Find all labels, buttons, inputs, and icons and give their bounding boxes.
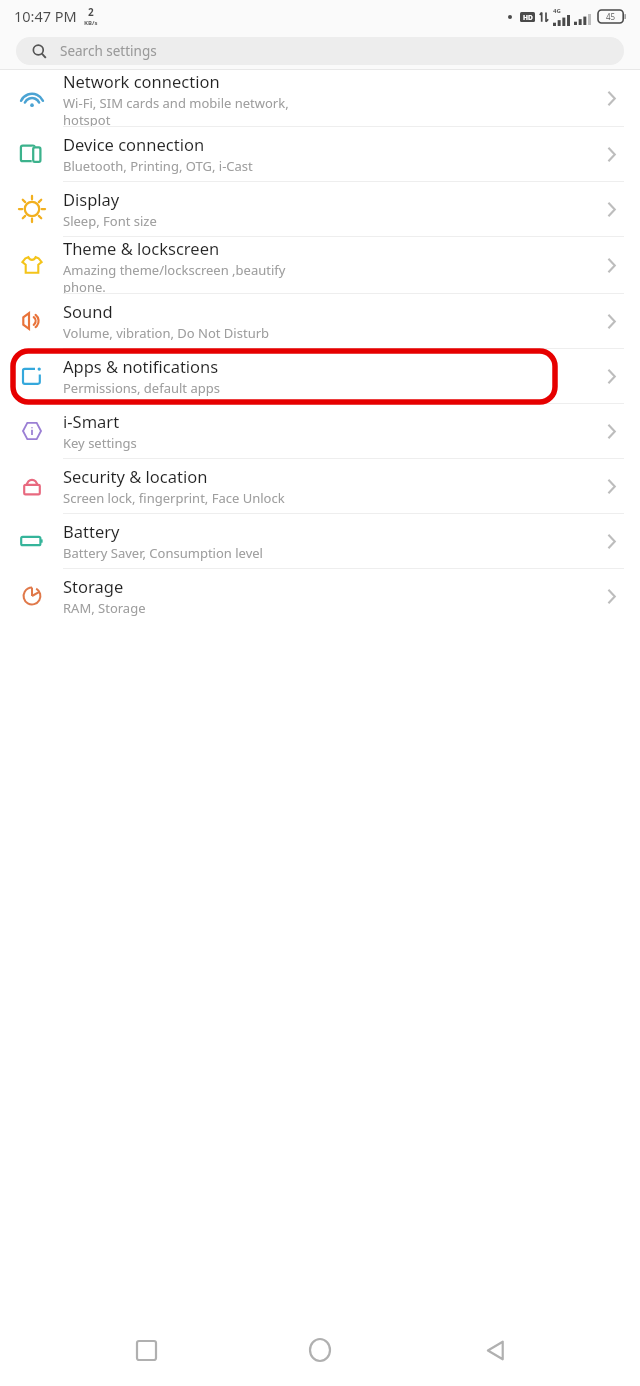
staticText: Sound	[63, 300, 113, 322]
button[interactable]: Recent apps	[117, 1321, 175, 1379]
button[interactable]: Display	[0, 182, 640, 236]
staticText: Search settings	[60, 42, 157, 60]
staticText: 45	[606, 11, 616, 22]
button[interactable]: Theme & lockscreen	[0, 237, 640, 293]
staticText: 10:47 PM	[14, 6, 77, 26]
staticText: Battery Saver, Consumption level	[63, 544, 263, 562]
button[interactable]: Battery	[0, 514, 640, 568]
staticText: KB/s	[84, 19, 98, 27]
button[interactable]: Device connection	[0, 127, 640, 181]
staticText: RAM, Storage	[63, 599, 146, 617]
button[interactable]: Search settings	[16, 37, 624, 65]
staticText: Theme & lockscreen	[63, 237, 220, 259]
staticText: Screen lock, fingerprint, Face Unlock	[63, 489, 285, 507]
staticText: Bluetooth, Printing, OTG, i-Cast	[63, 157, 253, 175]
staticText: Display	[63, 188, 120, 210]
staticText: Wi-Fi, SIM cards and mobile network, hot…	[63, 94, 289, 126]
staticText: Key settings	[63, 434, 137, 452]
button[interactable]: i-Smart	[0, 404, 640, 458]
button[interactable]: Network connection	[0, 70, 640, 126]
staticText: Battery	[63, 520, 120, 542]
button[interactable]: Back	[466, 1321, 524, 1379]
staticText: Amazing theme/lockscreen ,beautify phone…	[63, 261, 286, 293]
button[interactable]: Sound	[0, 294, 640, 348]
staticText: i-Smart	[63, 410, 120, 432]
staticText: Apps & notifications	[63, 355, 219, 377]
button[interactable]: Security & location	[0, 459, 640, 513]
button[interactable]: Home	[291, 1321, 349, 1379]
staticText: 2	[88, 5, 94, 19]
button[interactable]: Apps & notifications	[0, 349, 640, 403]
staticText: Volume, vibration, Do Not Disturb	[63, 324, 270, 342]
button[interactable]: Storage	[0, 569, 640, 623]
staticText: Device connection	[63, 133, 205, 155]
staticText: Security & location	[63, 465, 208, 487]
staticText: Storage	[63, 575, 124, 597]
staticText: Permissions, default apps	[63, 379, 220, 397]
staticText: 4G	[553, 7, 561, 15]
staticText: HD	[523, 13, 533, 22]
staticText: Sleep, Font size	[63, 212, 157, 230]
staticText: Network connection	[63, 70, 220, 92]
